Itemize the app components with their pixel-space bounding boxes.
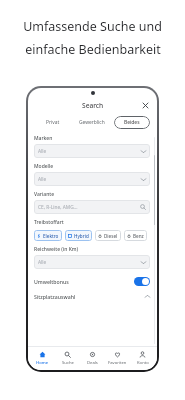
staticText: Search bbox=[82, 101, 104, 110]
staticText: Deals bbox=[87, 360, 98, 366]
button[interactable]: Alle bbox=[34, 255, 150, 269]
button[interactable]: Konto bbox=[130, 349, 155, 367]
button[interactable]: Suche bbox=[55, 349, 80, 367]
staticText: CE, R-Line, AMG... bbox=[38, 204, 78, 211]
staticText: Suche bbox=[62, 360, 74, 366]
staticText: Privat bbox=[46, 119, 60, 126]
staticText: Gewerblich bbox=[79, 119, 105, 126]
button[interactable]: Elektro bbox=[34, 230, 62, 241]
staticText: Umweltbonus bbox=[34, 278, 69, 285]
staticText: Favoriten bbox=[108, 360, 127, 366]
staticText: Sitzplatzauswahl bbox=[34, 293, 76, 300]
staticText: Treibstoffart bbox=[34, 219, 64, 226]
staticText: Benz bbox=[133, 233, 144, 239]
button[interactable]: Deals bbox=[80, 349, 105, 367]
button[interactable]: Gewerblich bbox=[74, 116, 110, 129]
staticText: Modelle bbox=[34, 163, 54, 170]
staticText: Alle bbox=[38, 148, 47, 155]
button[interactable]: Diesel bbox=[95, 230, 121, 241]
button[interactable]: Privat bbox=[35, 116, 70, 129]
staticText: Elektro bbox=[43, 233, 59, 239]
staticText: Hybrid bbox=[74, 233, 89, 239]
staticText: einfache Bedienbarkeit bbox=[25, 41, 161, 58]
button[interactable]: Favoriten bbox=[105, 349, 130, 367]
staticText: Umfassende Suche und bbox=[23, 18, 162, 35]
button[interactable]: Benz bbox=[124, 230, 147, 241]
button[interactable]: Schließen bbox=[140, 100, 150, 110]
button[interactable]: Hybrid bbox=[65, 230, 92, 241]
button[interactable]: Alle bbox=[34, 172, 150, 186]
button[interactable]: Umweltbonus bbox=[34, 275, 150, 287]
button[interactable]: Home bbox=[30, 349, 55, 367]
button[interactable]: Umweltbonus Schalter bbox=[134, 277, 150, 286]
staticText: Alle bbox=[38, 259, 47, 266]
button[interactable]: Beides bbox=[114, 116, 150, 129]
staticText: Variante bbox=[34, 191, 55, 198]
staticText: Konto bbox=[137, 360, 149, 366]
staticText: Alle bbox=[38, 176, 47, 183]
staticText: Diesel bbox=[104, 233, 118, 239]
button[interactable]: CE, R-Line, AMG... bbox=[34, 200, 150, 214]
staticText: Beides bbox=[124, 119, 140, 126]
staticText: Home bbox=[36, 360, 49, 366]
staticText: Reichweite (in Km) bbox=[34, 246, 79, 253]
button[interactable]: Alle bbox=[34, 144, 150, 158]
staticText: Marken bbox=[34, 135, 53, 142]
